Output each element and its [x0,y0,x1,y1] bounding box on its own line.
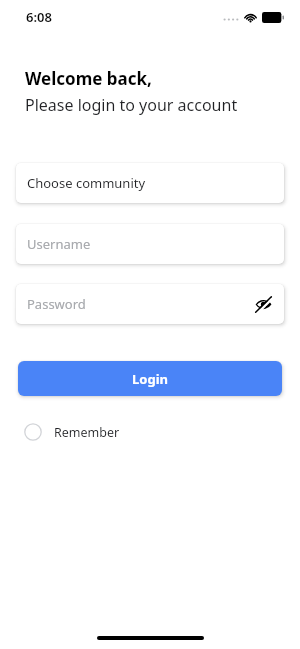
button[interactable]: Password [16,284,284,324]
staticText: Please login to your account [25,94,238,116]
button[interactable]: Login [18,361,282,396]
staticText: 6:08 [26,8,52,26]
button[interactable]: Username [16,224,284,264]
staticText: Remember [54,424,120,441]
staticText: Login [132,370,168,388]
staticText: Username [27,235,91,253]
staticText: Password [27,295,86,313]
staticText: Choose community [27,174,146,192]
button[interactable]: Choose community [16,163,284,203]
button[interactable]: Remember [18,416,120,448]
staticText: Welcome back, [25,67,152,90]
button[interactable]: Show password [252,293,274,315]
